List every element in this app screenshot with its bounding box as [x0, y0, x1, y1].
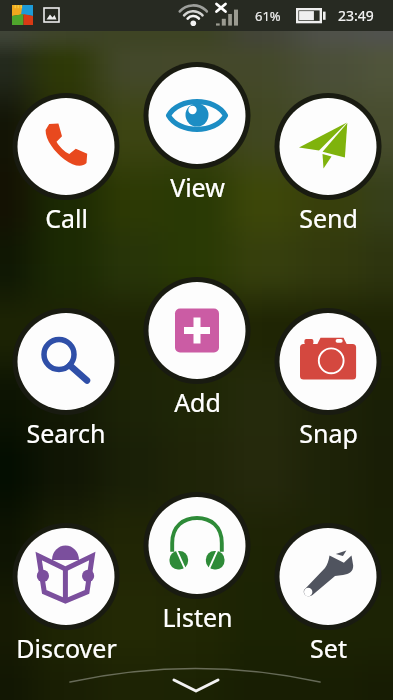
button[interactable]: View [137, 59, 257, 210]
staticText: Call [45, 201, 88, 235]
staticText: Search [26, 416, 106, 450]
staticText: 23:49 [338, 6, 374, 25]
button[interactable]: Call [6, 90, 126, 241]
button[interactable]: Listen [137, 489, 257, 640]
button[interactable]: Add [137, 274, 257, 425]
staticText: Send [299, 201, 358, 235]
button[interactable]: Send [268, 90, 388, 241]
staticText: Add [174, 385, 221, 419]
staticText: Listen [162, 600, 233, 634]
staticText: 61% [255, 7, 281, 25]
button[interactable]: Search [6, 305, 126, 456]
staticText: Snap [299, 416, 358, 450]
staticText: Discover [16, 631, 117, 665]
staticText: View [170, 170, 225, 204]
button[interactable]: Set [268, 520, 388, 671]
button[interactable]: Snap [268, 305, 388, 456]
button[interactable]: Discover [6, 520, 126, 671]
staticText: Set [310, 631, 347, 665]
